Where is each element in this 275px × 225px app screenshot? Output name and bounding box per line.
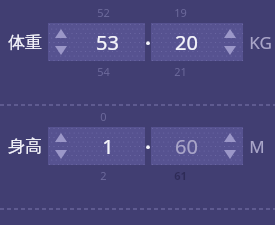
- staticText: 2: [100, 168, 107, 183]
- staticText: 20: [175, 29, 198, 56]
- button[interactable]: 身高 integer value 1: [48, 127, 145, 165]
- staticText: 60: [175, 133, 198, 160]
- staticText: KG: [249, 31, 272, 54]
- button[interactable]: 身高 fraction value 60: [151, 127, 243, 165]
- staticText: 体重: [8, 32, 42, 53]
- button[interactable]: 体重 integer value 53: [48, 23, 145, 61]
- staticText: 21: [174, 64, 187, 79]
- staticText: 52: [97, 5, 110, 20]
- staticText: 1: [102, 133, 114, 160]
- staticText: 0: [100, 109, 107, 124]
- staticText: M: [249, 135, 265, 158]
- button[interactable]: 体重 fraction value 20: [151, 23, 243, 61]
- staticText: 61: [174, 168, 187, 183]
- staticText: 53: [96, 29, 119, 56]
- staticText: 身高: [8, 136, 42, 157]
- staticText: 19: [174, 5, 187, 20]
- staticText: 54: [97, 64, 110, 79]
